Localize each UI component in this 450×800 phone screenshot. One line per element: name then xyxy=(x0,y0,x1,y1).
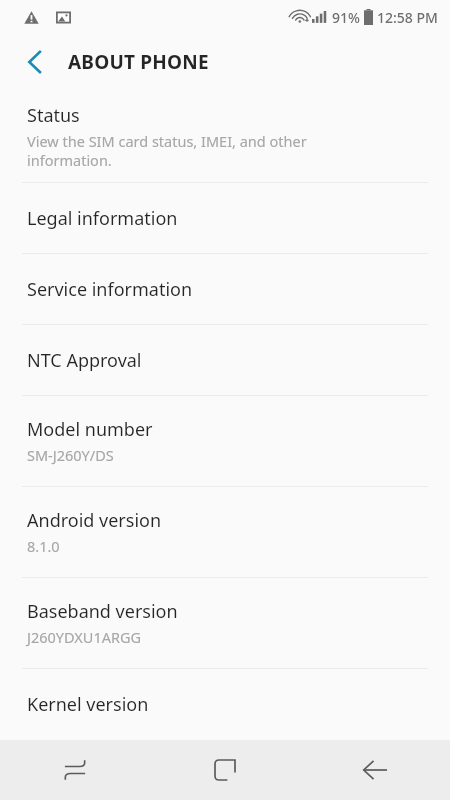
staticText: Model number xyxy=(27,417,153,442)
staticText: View the SIM card status, IMEI, and othe… xyxy=(27,131,307,170)
staticText: ABOUT PHONE xyxy=(68,49,209,75)
button[interactable]: Back xyxy=(300,740,450,800)
staticText: Baseband version xyxy=(27,599,178,624)
staticText: Android version xyxy=(27,508,162,533)
button[interactable]: Service information xyxy=(0,254,450,324)
staticText: 8.1.0 xyxy=(27,536,60,556)
staticText: SM-J260Y/DS xyxy=(27,445,114,465)
button[interactable]: Legal information xyxy=(0,183,450,253)
button[interactable]: Status xyxy=(0,90,450,182)
button[interactable]: Android version xyxy=(0,487,450,577)
button[interactable]: Baseband version xyxy=(0,578,450,668)
button[interactable]: NTC Approval xyxy=(0,325,450,395)
staticText: J260YDXU1ARGG xyxy=(27,627,142,647)
button[interactable]: Home xyxy=(150,740,300,800)
button[interactable]: Kernel version xyxy=(0,669,450,739)
staticText: 91% xyxy=(332,8,360,27)
staticText: 12:58 PM xyxy=(377,8,438,27)
staticText: Kernel version xyxy=(27,692,149,717)
staticText: NTC Approval xyxy=(27,348,142,373)
button[interactable]: Recents xyxy=(0,740,150,800)
staticText: Legal information xyxy=(27,206,178,231)
staticText: Status xyxy=(27,103,80,128)
staticText: Service information xyxy=(27,277,193,302)
button[interactable]: Navigate up xyxy=(14,42,54,82)
button[interactable]: Model number xyxy=(0,396,450,486)
